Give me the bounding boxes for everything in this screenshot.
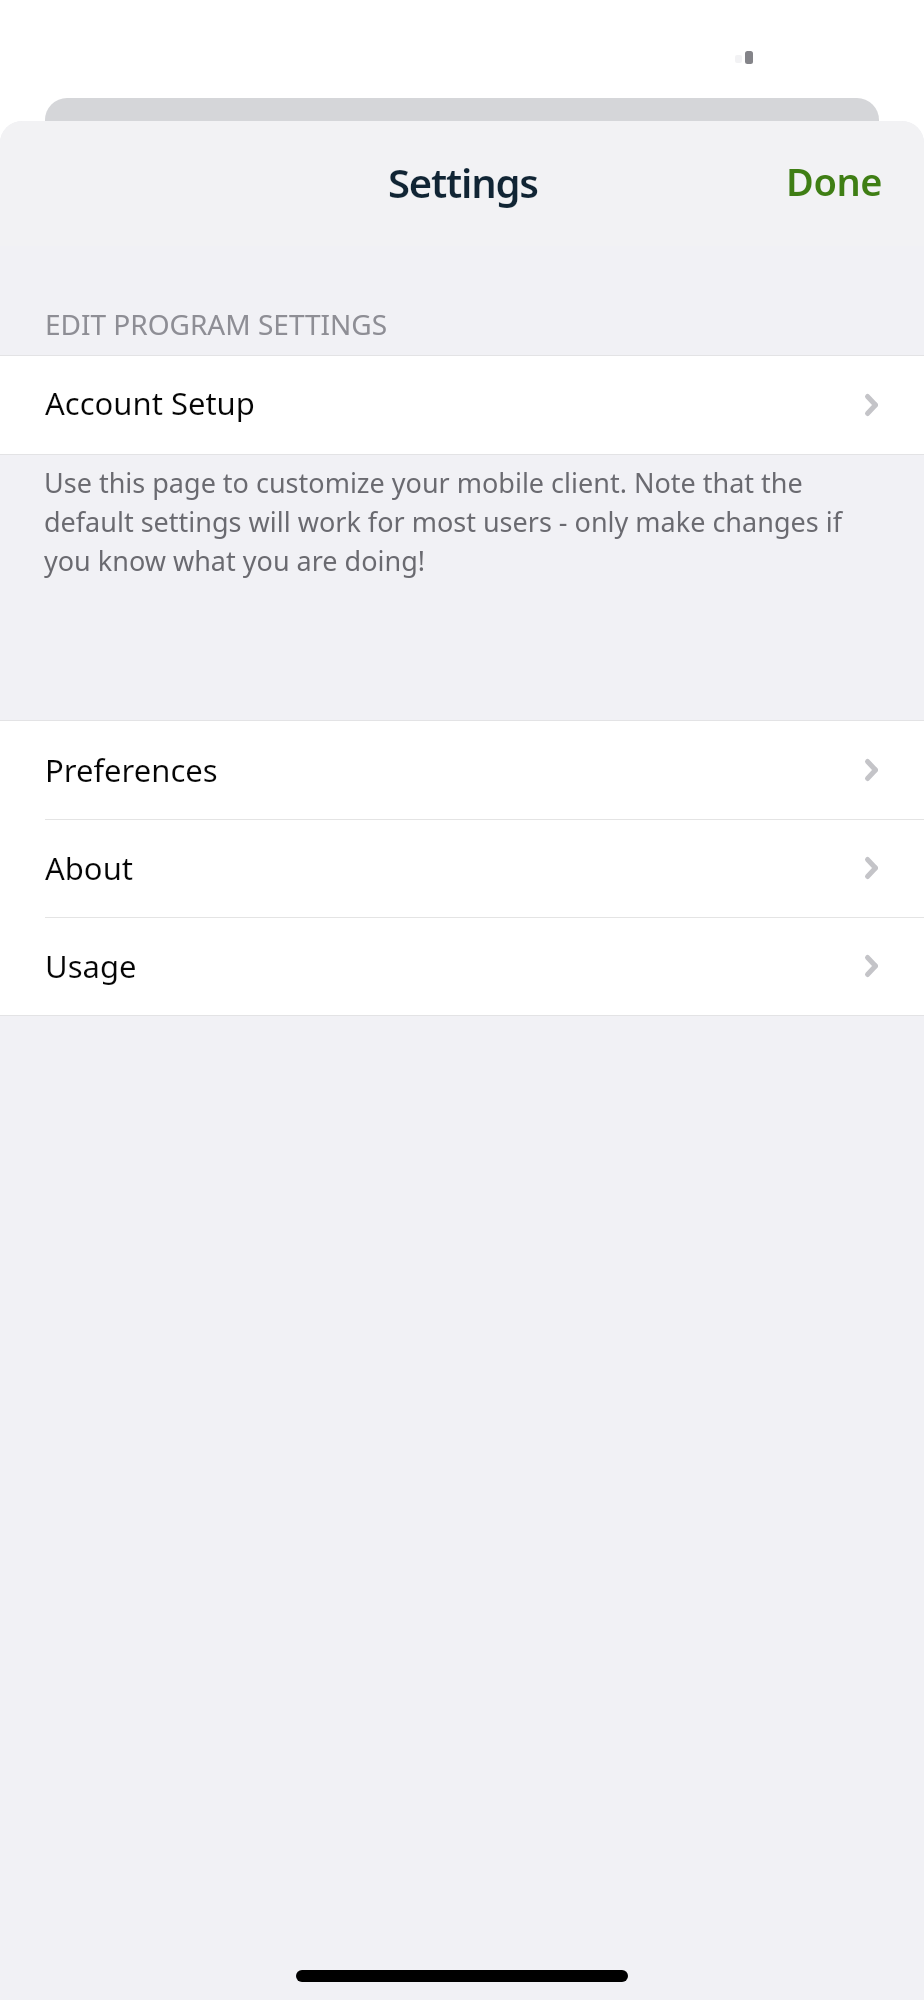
button[interactable]: Usage — [0, 917, 924, 1015]
button[interactable]: Done — [764, 143, 905, 219]
staticText: Usage — [45, 945, 137, 987]
staticText: Settings — [388, 155, 538, 209]
other: Open Preferences — [865, 759, 878, 781]
staticText: Use this page to customize your mobile c… — [44, 464, 854, 579]
staticText: EDIT PROGRAM SETTINGS — [45, 305, 388, 343]
button[interactable]: Preferences — [0, 721, 924, 819]
staticText: About — [45, 847, 133, 889]
button[interactable]: About — [0, 819, 924, 917]
button[interactable]: Account Setup — [0, 356, 924, 454]
staticText: Done — [786, 155, 883, 207]
staticText: Account Setup — [45, 382, 255, 424]
other: Open Usage — [865, 955, 878, 977]
staticText: Preferences — [45, 749, 218, 791]
other: Open Account Setup — [865, 394, 878, 416]
other: Open About — [865, 857, 878, 879]
